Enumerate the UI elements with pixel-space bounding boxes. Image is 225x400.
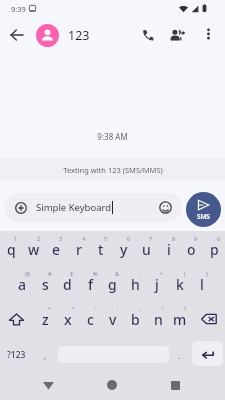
button[interactable]: ( bbox=[169, 268, 191, 300]
button[interactable]: Enter bbox=[192, 341, 223, 366]
staticText: z bbox=[42, 310, 49, 329]
staticText: 5 bbox=[104, 235, 108, 242]
button[interactable]: More options bbox=[197, 23, 219, 45]
staticText: d bbox=[63, 275, 72, 294]
staticText: k bbox=[176, 275, 184, 294]
button[interactable]: Recents bbox=[162, 372, 188, 398]
button[interactable]: Add people bbox=[166, 23, 189, 46]
staticText: $ bbox=[70, 270, 74, 277]
staticText: a bbox=[18, 275, 27, 294]
button[interactable]: ; bbox=[124, 303, 146, 335]
staticText: 9:38 AM bbox=[0, 131, 225, 142]
staticText: , bbox=[44, 350, 47, 361]
staticText: : bbox=[117, 305, 119, 312]
staticText: + bbox=[160, 270, 164, 277]
button[interactable]: Send SMS bbox=[186, 192, 221, 227]
staticText: ? bbox=[184, 305, 187, 312]
button[interactable]: ? bbox=[169, 303, 191, 335]
staticText: 4 bbox=[82, 235, 86, 242]
staticText: g bbox=[108, 275, 117, 294]
button[interactable]: & bbox=[101, 268, 123, 300]
staticText: @ bbox=[25, 270, 30, 277]
staticText: y bbox=[120, 240, 128, 259]
staticText: m bbox=[173, 310, 187, 329]
staticText: p bbox=[210, 240, 219, 259]
button[interactable]: @ bbox=[11, 268, 33, 300]
button[interactable]: ) bbox=[191, 268, 213, 300]
button[interactable]: Backspace bbox=[197, 307, 221, 331]
button[interactable]: Call bbox=[136, 23, 159, 46]
staticText: x bbox=[64, 310, 72, 329]
staticText: o bbox=[187, 240, 196, 259]
staticText: ( bbox=[184, 270, 186, 277]
button[interactable]: Back bbox=[35, 372, 61, 398]
button[interactable]: 4 bbox=[68, 233, 90, 265]
staticText: Simple Keyboard bbox=[36, 201, 112, 214]
button[interactable]: 7 bbox=[135, 233, 157, 265]
button[interactable]: * bbox=[34, 303, 56, 335]
staticText: f bbox=[88, 275, 93, 294]
staticText: # bbox=[48, 270, 52, 277]
button[interactable]: $ bbox=[56, 268, 78, 300]
staticText: 3 bbox=[59, 235, 63, 242]
staticText: 9:39 bbox=[11, 4, 26, 14]
button[interactable]: Simple Keyboard bbox=[4, 193, 182, 222]
staticText: 0 bbox=[217, 235, 221, 242]
staticText: j bbox=[155, 275, 159, 294]
button[interactable]: 123 bbox=[36, 23, 90, 47]
staticText: w bbox=[28, 240, 40, 259]
button[interactable]: 9 bbox=[180, 233, 202, 265]
staticText: 1 bbox=[14, 235, 18, 242]
button[interactable]: % bbox=[79, 268, 101, 300]
staticText: ! bbox=[162, 305, 164, 312]
button[interactable]: : bbox=[102, 303, 124, 335]
staticText: i bbox=[167, 240, 171, 259]
staticText: & bbox=[115, 270, 120, 277]
button[interactable]: + bbox=[146, 268, 168, 300]
staticText: 123 bbox=[68, 27, 90, 44]
button[interactable]: 8 bbox=[158, 233, 180, 265]
button[interactable]: 2 bbox=[23, 233, 45, 265]
staticText: e bbox=[52, 240, 61, 259]
button[interactable]: Shift bbox=[4, 307, 28, 331]
staticText: s bbox=[42, 275, 49, 294]
button[interactable]: 0 bbox=[203, 233, 225, 265]
staticText: . bbox=[178, 350, 181, 361]
staticText: 7 bbox=[149, 235, 153, 242]
button[interactable]: Period bbox=[172, 343, 186, 367]
staticText: q bbox=[7, 240, 16, 259]
staticText: SMS bbox=[197, 212, 210, 221]
button[interactable]: ! bbox=[147, 303, 169, 335]
staticText: Texting with 123 (SMS/MMS) bbox=[63, 165, 163, 175]
button[interactable]: " bbox=[57, 303, 79, 335]
button[interactable]: Back bbox=[5, 23, 28, 46]
staticText: v bbox=[109, 310, 117, 329]
staticText: b bbox=[131, 310, 140, 329]
staticText: - bbox=[139, 270, 141, 277]
staticText: c bbox=[87, 310, 94, 329]
button[interactable]: ?123 bbox=[2, 343, 31, 367]
button[interactable]: Home bbox=[99, 372, 125, 398]
staticText: u bbox=[142, 240, 151, 259]
staticText: % bbox=[93, 270, 98, 277]
staticText: r bbox=[76, 240, 82, 259]
staticText: 6 bbox=[127, 235, 131, 242]
staticText: 8 bbox=[172, 235, 176, 242]
button[interactable]: 3 bbox=[45, 233, 67, 265]
button[interactable]: # bbox=[34, 268, 56, 300]
button[interactable]: 6 bbox=[113, 233, 135, 265]
button[interactable]: - bbox=[124, 268, 146, 300]
button[interactable]: Comma bbox=[37, 343, 53, 367]
button[interactable]: ' bbox=[79, 303, 101, 335]
button[interactable]: 5 bbox=[90, 233, 112, 265]
staticText: " bbox=[72, 305, 75, 312]
staticText: n bbox=[154, 310, 163, 329]
staticText: 9 bbox=[194, 235, 198, 242]
staticText: t bbox=[98, 240, 104, 259]
button[interactable]: 1 bbox=[0, 233, 22, 265]
staticText: l bbox=[200, 275, 204, 294]
staticText: 2 bbox=[37, 235, 41, 242]
staticText: ; bbox=[139, 305, 141, 312]
staticText: ) bbox=[206, 270, 208, 277]
